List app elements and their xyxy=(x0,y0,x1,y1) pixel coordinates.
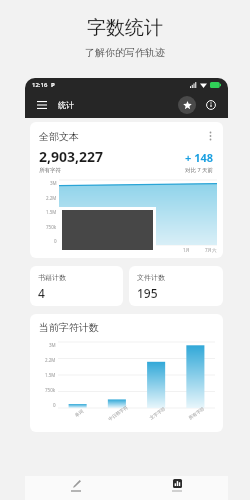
staticText: 750k xyxy=(46,224,57,230)
button[interactable]: Info xyxy=(202,96,220,114)
staticText: 当前字符计数 xyxy=(39,321,99,334)
staticText: 3M xyxy=(50,180,57,186)
staticText: 文字字符 xyxy=(149,406,167,421)
staticText: 7月六 xyxy=(205,247,217,253)
staticText: 2,903,227 xyxy=(39,147,104,166)
button[interactable]: 文件计数 xyxy=(129,266,223,306)
staticText: 统计 xyxy=(58,100,74,110)
staticText: 2.2M xyxy=(45,357,56,363)
button[interactable]: Statistics xyxy=(126,476,228,500)
staticText: 中日韩字符 xyxy=(107,405,129,423)
staticText: 1月 xyxy=(183,247,191,253)
staticText: 0 xyxy=(53,402,56,408)
staticText: 了解你的写作轨迹 xyxy=(85,46,165,59)
staticText: 750k xyxy=(45,387,56,393)
button[interactable]: More options xyxy=(203,129,217,143)
staticText: 1.5M xyxy=(46,209,57,215)
button[interactable]: Write xyxy=(25,476,126,500)
staticText: P xyxy=(51,81,55,89)
button[interactable]: 当前字符计数 xyxy=(30,314,223,432)
staticText: 0 xyxy=(54,238,57,244)
button[interactable]: 全部文本 xyxy=(30,122,223,258)
staticText: 文件计数 xyxy=(137,273,165,282)
staticText: 书籍计数 xyxy=(38,273,66,282)
staticText: 195 xyxy=(137,285,158,301)
staticText: 所有字符 xyxy=(188,406,206,421)
button[interactable]: 书籍计数 xyxy=(30,266,123,306)
staticText: 对比 7 天前 xyxy=(185,166,214,174)
staticText: + 148 xyxy=(185,150,214,165)
staticText: 1.5M xyxy=(45,372,56,378)
staticText: 4 xyxy=(38,285,45,301)
staticText: 字数统计 xyxy=(87,16,163,40)
staticText: 单词 xyxy=(74,409,85,419)
button[interactable]: Favorite xyxy=(178,96,196,114)
staticText: 全部文本 xyxy=(39,130,79,143)
staticText: 3M xyxy=(49,342,56,348)
staticText: 所有字符 xyxy=(39,167,61,174)
staticText: 12:16 xyxy=(32,81,48,89)
staticText: 7月日 xyxy=(59,247,71,253)
button[interactable]: Menu xyxy=(33,96,51,114)
staticText: 2.2M xyxy=(46,195,57,201)
